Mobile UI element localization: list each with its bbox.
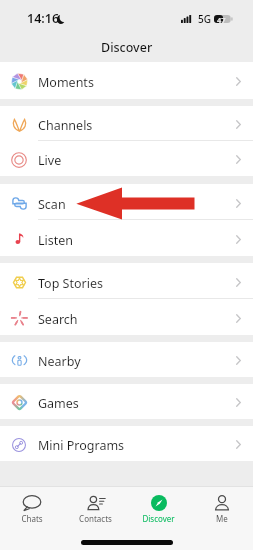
- button[interactable]: Games: [0, 384, 253, 419]
- button[interactable]: Top Stories: [0, 263, 253, 299]
- button[interactable]: Scan: [0, 184, 253, 220]
- staticText: Scan: [38, 196, 66, 213]
- button[interactable]: Nearby: [0, 342, 253, 377]
- button[interactable]: Chats tab: [0, 487, 64, 531]
- button[interactable]: Search: [0, 299, 253, 335]
- button[interactable]: Moments: [0, 62, 253, 99]
- button[interactable]: Listen: [0, 220, 253, 256]
- staticText: 14:16: [27, 10, 60, 27]
- staticText: Discover: [101, 39, 153, 56]
- staticText: Moments: [38, 74, 94, 91]
- staticText: Top Stories: [38, 275, 103, 292]
- button[interactable]: Live: [0, 141, 253, 176]
- staticText: Listen: [38, 232, 74, 249]
- staticText: Me: [216, 513, 228, 524]
- staticText: Games: [38, 395, 79, 412]
- button[interactable]: Discover tab: [127, 487, 190, 531]
- staticText: 5G: [198, 12, 211, 26]
- staticText: Chats: [21, 513, 43, 524]
- button[interactable]: Contacts tab: [64, 487, 127, 531]
- staticText: Contacts: [79, 513, 112, 524]
- button[interactable]: Me tab: [190, 487, 253, 531]
- staticText: 47: [217, 15, 226, 25]
- staticText: Discover: [142, 513, 175, 524]
- staticText: Search: [38, 311, 78, 328]
- staticText: Channels: [38, 117, 93, 134]
- staticText: Live: [38, 152, 62, 169]
- button[interactable]: Channels: [0, 106, 253, 141]
- staticText: Nearby: [38, 353, 81, 370]
- button[interactable]: Mini Programs: [0, 426, 253, 461]
- staticText: Mini Programs: [38, 437, 125, 454]
